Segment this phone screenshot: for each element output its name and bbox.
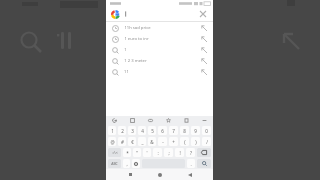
button[interactable]: Google search xyxy=(110,116,119,125)
button[interactable]: Insert suggestion xyxy=(200,68,208,76)
button[interactable]: + xyxy=(169,137,178,146)
button[interactable]: * xyxy=(123,148,131,157)
staticText: ; xyxy=(168,150,170,156)
button[interactable]: 8 xyxy=(180,126,189,135)
other: Google xyxy=(111,10,120,19)
staticText: ) xyxy=(195,139,197,145)
button[interactable]: & xyxy=(148,137,156,146)
staticText: ( xyxy=(184,139,186,145)
button[interactable]: GIF xyxy=(128,116,137,125)
button[interactable]: Insert suggestion xyxy=(200,24,208,32)
staticText: & xyxy=(150,139,154,145)
button[interactable]: / xyxy=(202,137,211,146)
button[interactable]: ? xyxy=(186,148,195,157)
staticText: ? xyxy=(190,150,192,156)
staticText: / xyxy=(206,139,208,145)
button[interactable]: 0 xyxy=(202,126,211,135)
staticText: 1 euro to inr xyxy=(124,36,149,42)
staticText: ABC xyxy=(111,161,118,166)
button[interactable]: 1 euro to inr xyxy=(106,33,213,44)
button[interactable]: Insert suggestion xyxy=(200,35,208,43)
staticText: 1 2 3 meter xyxy=(124,58,147,64)
button[interactable]: Search xyxy=(197,159,211,168)
staticText: =\< xyxy=(112,150,118,155)
staticText: , xyxy=(126,161,128,167)
staticText: 1 xyxy=(111,128,114,134)
button[interactable]: Clipboard xyxy=(182,116,191,125)
button[interactable]: Favorites xyxy=(164,116,173,125)
button[interactable]: 4 xyxy=(138,126,146,135)
staticText: 0 xyxy=(205,128,208,134)
staticText: : xyxy=(157,150,159,156)
staticText: # xyxy=(121,139,124,145)
button[interactable]: ( xyxy=(180,137,189,146)
staticText: 5 xyxy=(151,128,154,134)
button[interactable]: _ xyxy=(138,137,146,146)
button[interactable]: =\< xyxy=(108,148,121,157)
button[interactable]: , xyxy=(123,159,130,168)
button[interactable]: Recent apps xyxy=(125,169,136,180)
staticText: 4 xyxy=(141,128,144,134)
staticText: 11h sad price xyxy=(124,25,151,31)
button[interactable]: 1 xyxy=(106,44,213,55)
button[interactable]: Insert suggestion xyxy=(200,57,208,65)
staticText: 8 xyxy=(183,128,186,134)
staticText: 9 xyxy=(194,128,197,134)
button[interactable]: Back xyxy=(184,169,195,180)
button[interactable]: Emoji xyxy=(146,116,155,125)
staticText: 6 xyxy=(161,128,164,134)
staticText: _ xyxy=(141,139,144,145)
button[interactable]: 11h sad price xyxy=(106,22,213,33)
button[interactable]: 3 xyxy=(128,126,136,135)
button[interactable]: # xyxy=(118,137,126,146)
button[interactable]: ! xyxy=(175,148,184,157)
staticText: @ xyxy=(110,139,115,145)
button[interactable]: 6 xyxy=(158,126,167,135)
button[interactable]: Google xyxy=(106,7,213,21)
staticText: 11 xyxy=(124,69,129,75)
staticText: - xyxy=(162,139,164,145)
button[interactable]: . xyxy=(187,159,195,168)
staticText: " xyxy=(136,150,138,156)
staticText: ! xyxy=(179,150,181,156)
button[interactable]: More options xyxy=(200,116,209,125)
button[interactable]: ; xyxy=(164,148,173,157)
button[interactable]: Backspace xyxy=(197,148,211,157)
button[interactable]: 7 xyxy=(169,126,178,135)
staticText: € xyxy=(131,139,134,145)
button[interactable]: ) xyxy=(191,137,200,146)
button[interactable]: Clear search xyxy=(198,9,208,19)
staticText: . xyxy=(190,161,192,167)
button[interactable]: " xyxy=(133,148,141,157)
button[interactable]: ' xyxy=(143,148,151,157)
button[interactable]: - xyxy=(158,137,167,146)
button[interactable]: : xyxy=(153,148,162,157)
button[interactable]: ABC xyxy=(108,159,121,168)
button[interactable]: 5 xyxy=(148,126,156,135)
staticText: 3 xyxy=(131,128,134,134)
button[interactable]: Insert suggestion xyxy=(200,46,208,54)
button[interactable]: € xyxy=(128,137,136,146)
button[interactable]: @ xyxy=(108,137,116,146)
staticText: * xyxy=(126,150,129,156)
button[interactable]: Home xyxy=(154,169,165,180)
button[interactable]: 1 2 3 meter xyxy=(106,55,213,66)
button[interactable]: 1 xyxy=(108,126,116,135)
staticText: 1 xyxy=(124,47,127,53)
button[interactable]: 11 xyxy=(106,66,213,77)
button[interactable]: Change language xyxy=(132,159,140,168)
staticText: 7 xyxy=(172,128,175,134)
button[interactable]: 2 xyxy=(118,126,126,135)
staticText: ' xyxy=(146,150,148,156)
button[interactable]: 9 xyxy=(191,126,200,135)
staticText: + xyxy=(172,139,175,145)
staticText: 2 xyxy=(121,128,124,134)
